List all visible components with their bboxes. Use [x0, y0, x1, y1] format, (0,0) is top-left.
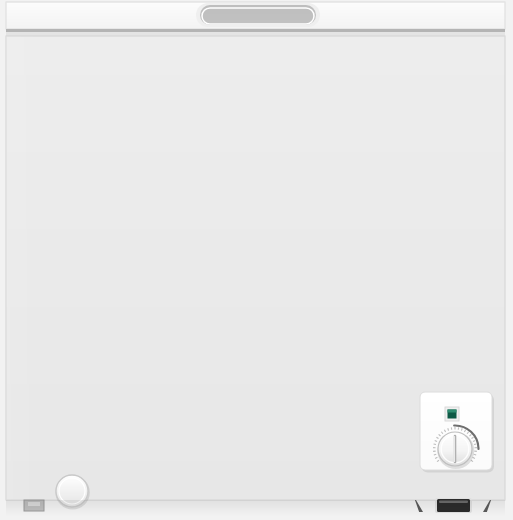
- button[interactable]: Chest freezer product photo: [0, 0, 513, 520]
